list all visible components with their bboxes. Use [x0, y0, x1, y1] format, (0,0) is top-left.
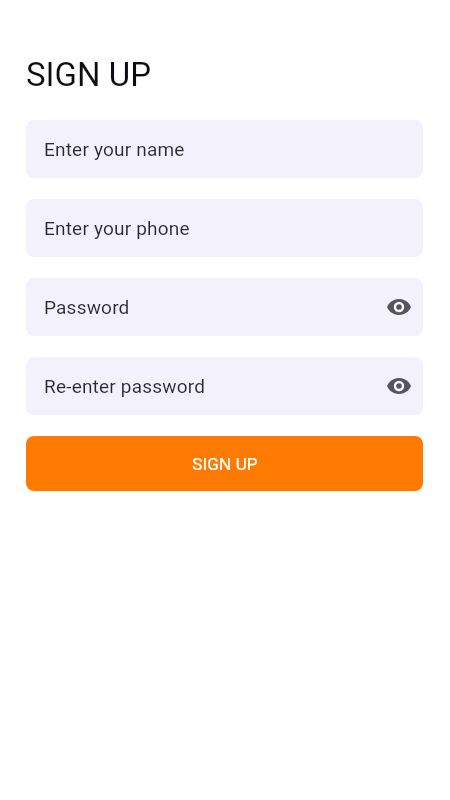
staticText: Password [44, 296, 130, 318]
button[interactable]: Show password [382, 290, 416, 324]
staticText: Re-enter password [44, 375, 206, 397]
staticText: Enter your name [44, 138, 185, 160]
button[interactable]: Enter your name [26, 120, 423, 178]
button[interactable]: Enter your phone [26, 199, 423, 257]
button[interactable]: Password [26, 278, 423, 336]
button[interactable]: SIGN UP [26, 436, 423, 491]
button[interactable]: Re-enter password [26, 357, 423, 415]
button[interactable]: Show password [382, 369, 416, 403]
staticText: SIGN UP [26, 55, 151, 94]
staticText: Enter your phone [44, 217, 190, 239]
staticText: SIGN UP [192, 454, 258, 474]
